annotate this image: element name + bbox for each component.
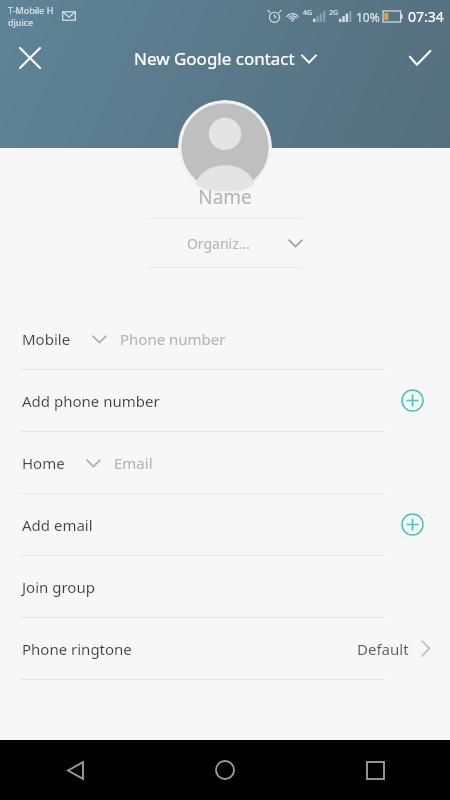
button[interactable]: New Google contact: [126, 43, 324, 74]
staticText: Join group: [22, 577, 95, 597]
staticText: 4G: [303, 8, 313, 18]
button[interactable]: Save contact: [396, 34, 444, 82]
staticText: 10%: [356, 9, 380, 25]
staticText: Phone number: [120, 329, 226, 349]
staticText: Phone ringtone: [22, 639, 132, 659]
staticText: 2G: [329, 8, 339, 18]
staticText: Add phone number: [22, 391, 160, 411]
staticText: T-Mobile H: [8, 4, 54, 16]
button[interactable]: Add phone number: [0, 370, 450, 431]
staticText: djuice: [8, 16, 34, 28]
staticText: Home: [22, 453, 65, 473]
button[interactable]: Organiz...: [148, 219, 302, 267]
staticText: Add email: [22, 515, 93, 535]
button[interactable]: Home: [0, 432, 450, 493]
button[interactable]: Back: [0, 740, 150, 800]
button[interactable]: Close: [6, 34, 54, 82]
button[interactable]: Add email: [0, 494, 450, 555]
staticText: New Google contact: [134, 47, 295, 70]
staticText: Name: [198, 184, 252, 210]
staticText: Organiz...: [148, 234, 289, 253]
staticText: Email: [114, 453, 153, 473]
button[interactable]: Home: [150, 740, 300, 800]
staticText: 07:34: [408, 7, 444, 26]
button[interactable]: Name: [148, 176, 302, 218]
staticText: Mobile: [22, 329, 71, 349]
button[interactable]: Recent apps: [300, 740, 450, 800]
button[interactable]: Mobile: [0, 308, 450, 369]
staticText: Default: [357, 639, 409, 659]
button[interactable]: Join group: [0, 556, 450, 617]
button[interactable]: Add contact photo: [178, 100, 272, 194]
button[interactable]: Phone ringtone: [0, 618, 450, 679]
